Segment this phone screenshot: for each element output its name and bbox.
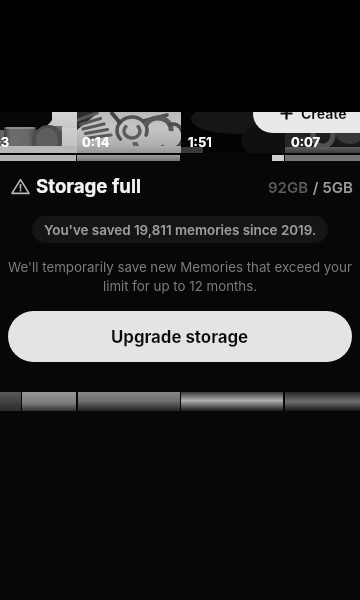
staticText: Storage full (36, 175, 142, 198)
other: Warning (11, 177, 30, 196)
staticText: 92GB (268, 178, 309, 196)
staticText: 0:07 (291, 134, 321, 150)
staticText: Upgrade storage (111, 327, 249, 347)
staticText: You've saved 19,811 memories since 2019. (44, 222, 317, 238)
staticText: 1:51 (188, 134, 212, 150)
staticText: We'll temporarily save new Memories that… (5, 259, 355, 294)
staticText: 0:03 (0, 134, 10, 150)
staticText: / 5GB (309, 178, 353, 196)
staticText: 0:14 (82, 134, 110, 150)
button[interactable]: Create (253, 94, 360, 133)
staticText: Create (301, 105, 347, 122)
button[interactable]: Upgrade storage (8, 311, 352, 362)
button[interactable]: You've saved 19,811 memories since 2019. (32, 216, 328, 243)
